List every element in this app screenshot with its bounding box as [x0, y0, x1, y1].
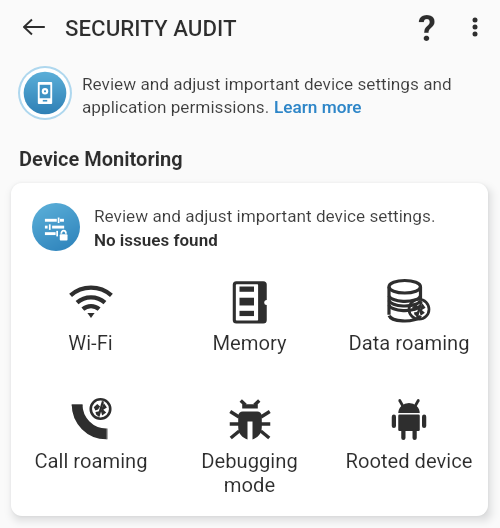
button[interactable]: Wi-Fi	[11, 274, 170, 355]
staticText: Device Monitoring	[19, 147, 183, 170]
staticText: No issues found	[94, 230, 218, 250]
staticText: Rooted device	[345, 449, 473, 473]
staticText: Debugging mode	[201, 449, 298, 497]
button[interactable]: More options	[453, 5, 497, 49]
button[interactable]: Data roaming	[329, 274, 488, 355]
staticText: ?	[418, 8, 436, 50]
staticText: Wi-Fi	[68, 331, 113, 355]
button[interactable]: Learn more	[274, 97, 362, 117]
staticText: Review and adjust important device setti…	[94, 206, 436, 226]
staticText: application permissions.	[82, 97, 274, 117]
button[interactable]: Help	[405, 7, 449, 51]
staticText: Call roaming	[34, 449, 148, 473]
staticText: SECURITY AUDIT	[65, 15, 237, 41]
staticText: Review and adjust important device setti…	[82, 74, 452, 94]
staticText: Data roaming	[348, 331, 470, 355]
staticText: Memory	[212, 331, 287, 355]
button[interactable]: Call roaming	[11, 392, 170, 473]
button[interactable]: Rooted device	[329, 392, 488, 473]
button[interactable]: Debugging mode	[170, 392, 329, 497]
button[interactable]: Memory	[170, 274, 329, 355]
button[interactable]: Back	[12, 5, 56, 49]
